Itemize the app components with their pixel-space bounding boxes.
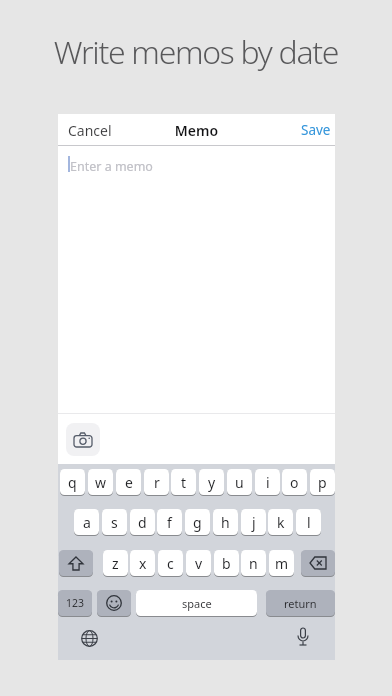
- button[interactable]: c: [158, 550, 183, 576]
- button[interactable]: [97, 590, 131, 616]
- staticText: d: [138, 513, 147, 532]
- staticText: y: [208, 473, 216, 492]
- staticText: e: [125, 473, 133, 492]
- button[interactable]: q: [60, 469, 85, 495]
- button[interactable]: e: [116, 469, 141, 495]
- button[interactable]: n: [241, 550, 266, 576]
- staticText: z: [112, 554, 119, 573]
- button[interactable]: Save: [301, 121, 331, 139]
- button[interactable]: z: [103, 550, 128, 576]
- button[interactable]: [59, 550, 93, 576]
- button[interactable]: v: [186, 550, 211, 576]
- button[interactable]: j: [241, 509, 266, 535]
- staticText: f: [167, 513, 172, 532]
- button[interactable]: m: [269, 550, 294, 576]
- button[interactable]: u: [227, 469, 252, 495]
- staticText: o: [290, 473, 299, 492]
- button[interactable]: y: [199, 469, 224, 495]
- staticText: b: [222, 554, 231, 573]
- button[interactable]: s: [102, 509, 127, 535]
- button[interactable]: l: [296, 509, 321, 535]
- button[interactable]: p: [310, 469, 335, 495]
- button[interactable]: [79, 628, 99, 648]
- staticText: t: [181, 473, 187, 492]
- staticText: 123: [66, 596, 85, 610]
- staticText: v: [195, 554, 203, 573]
- staticText: k: [277, 513, 285, 532]
- staticText: w: [95, 473, 107, 492]
- staticText: Enter a memo: [70, 158, 153, 175]
- button[interactable]: f: [157, 509, 182, 535]
- button[interactable]: return: [266, 590, 335, 616]
- button[interactable]: k: [268, 509, 293, 535]
- button[interactable]: d: [130, 509, 155, 535]
- button[interactable]: g: [185, 509, 210, 535]
- staticText: i: [266, 473, 270, 492]
- button[interactable]: [295, 627, 311, 649]
- staticText: Write memos by date: [0, 30, 392, 74]
- button[interactable]: 123: [58, 590, 92, 616]
- button[interactable]: w: [88, 469, 113, 495]
- button[interactable]: t: [171, 469, 196, 495]
- staticText: h: [221, 513, 230, 532]
- button[interactable]: [301, 550, 335, 576]
- button[interactable]: Cancel: [68, 121, 112, 140]
- staticText: return: [284, 596, 317, 611]
- staticText: n: [249, 554, 258, 573]
- staticText: j: [252, 513, 256, 532]
- staticText: r: [154, 473, 160, 492]
- staticText: p: [318, 473, 327, 492]
- staticText: c: [167, 554, 174, 573]
- staticText: l: [307, 513, 311, 532]
- staticText: Memo: [58, 121, 335, 140]
- button[interactable]: o: [282, 469, 307, 495]
- staticText: x: [139, 554, 147, 573]
- staticText: a: [83, 513, 91, 532]
- button[interactable]: r: [144, 469, 169, 495]
- button[interactable]: space: [136, 590, 257, 616]
- button[interactable]: x: [130, 550, 155, 576]
- button[interactable]: a: [74, 509, 99, 535]
- button[interactable]: h: [213, 509, 238, 535]
- button[interactable]: [66, 423, 100, 456]
- button[interactable]: i: [255, 469, 280, 495]
- staticText: space: [182, 596, 212, 611]
- staticText: m: [275, 554, 289, 573]
- staticText: g: [193, 513, 202, 532]
- staticText: u: [235, 473, 244, 492]
- button[interactable]: b: [214, 550, 239, 576]
- staticText: s: [111, 513, 118, 532]
- staticText: q: [68, 473, 77, 492]
